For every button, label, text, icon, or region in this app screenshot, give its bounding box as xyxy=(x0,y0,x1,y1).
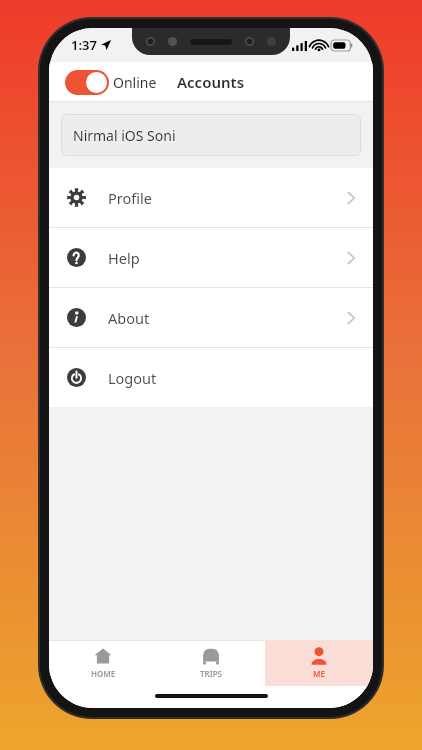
staticText: TRIPS xyxy=(200,668,222,679)
button[interactable]: Help xyxy=(49,228,373,287)
staticText: HOME xyxy=(91,668,116,679)
staticText: ME xyxy=(313,668,325,679)
staticText: Help xyxy=(108,248,140,268)
button[interactable]: Nirmal iOS Soni xyxy=(61,114,361,156)
button[interactable]: Logout xyxy=(49,348,373,407)
staticText: 1:37 xyxy=(71,36,97,54)
button[interactable]: HOME xyxy=(49,640,157,686)
button[interactable]: Online xyxy=(63,67,159,98)
staticText: Logout xyxy=(108,368,157,388)
staticText: Profile xyxy=(108,188,152,208)
button[interactable]: TRIPS xyxy=(157,640,265,686)
staticText: Nirmal iOS Soni xyxy=(73,126,176,145)
button[interactable]: ME xyxy=(265,640,373,686)
staticText: Accounts xyxy=(177,72,245,92)
staticText: About xyxy=(108,308,150,328)
button[interactable]: About xyxy=(49,288,373,347)
staticText: Online xyxy=(113,73,157,92)
button[interactable]: Profile xyxy=(49,168,373,227)
